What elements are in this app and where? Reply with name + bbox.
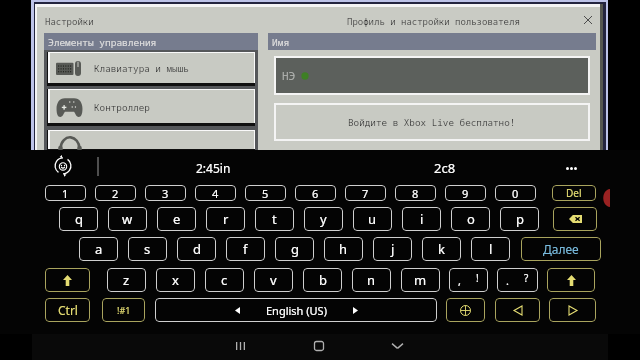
button[interactable]: f [226, 237, 265, 261]
button[interactable]: 2 [95, 185, 136, 201]
button[interactable]: d [177, 237, 216, 261]
button[interactable]: 6 [295, 185, 336, 201]
button[interactable]: b [303, 268, 342, 292]
button[interactable]: o [451, 207, 490, 231]
button[interactable]: a [79, 237, 118, 261]
staticText: ? [524, 271, 529, 285]
button[interactable]: y [304, 207, 343, 231]
staticText: 7 [362, 186, 369, 201]
button[interactable]: 0 [495, 185, 536, 201]
button[interactable] [446, 298, 485, 322]
staticText: Настройки [45, 15, 94, 27]
button[interactable] [549, 298, 596, 322]
staticText: 3 [162, 186, 169, 201]
button[interactable]: НЭ [276, 58, 588, 93]
button[interactable]: 1 [45, 185, 86, 201]
staticText: o [467, 210, 475, 228]
staticText: Профиль и настройки пользователя [347, 15, 520, 27]
button[interactable]: Контроллер [50, 90, 254, 123]
button[interactable]: 3 [145, 185, 186, 201]
button[interactable]: Emoji [53, 155, 73, 175]
button[interactable]: n [352, 268, 391, 292]
staticText: 2c8 [434, 159, 456, 177]
button[interactable]: w [108, 207, 147, 231]
staticText: 2:45in [196, 160, 231, 176]
staticText: 4 [212, 186, 219, 201]
button[interactable]: Recents [222, 333, 258, 359]
staticText: i [420, 210, 424, 228]
staticText: Элементы управления [48, 36, 157, 49]
button[interactable]: 4 [195, 185, 236, 201]
staticText: h [339, 240, 348, 258]
button[interactable]: z [107, 268, 146, 292]
staticText: x [172, 271, 179, 289]
button[interactable]: c [205, 268, 244, 292]
staticText: НЭ [282, 68, 296, 83]
staticText: t [272, 210, 277, 228]
staticText: b [319, 271, 327, 289]
button[interactable] [495, 298, 540, 322]
button[interactable]: 8 [395, 185, 436, 201]
staticText: s [144, 240, 151, 258]
button[interactable] [45, 268, 90, 292]
button[interactable]: Home [301, 333, 337, 359]
staticText: 6 [312, 186, 319, 201]
button[interactable]: q [59, 207, 98, 231]
staticText: ! [476, 271, 479, 285]
staticText: 5 [262, 186, 269, 201]
button[interactable] [547, 268, 595, 292]
button[interactable]: 9 [445, 185, 486, 201]
button[interactable]: s [128, 237, 167, 261]
button[interactable]: g [275, 237, 314, 261]
button[interactable]: x [156, 268, 195, 292]
button[interactable]: English (US) [155, 298, 437, 322]
button[interactable]: 7 [345, 185, 386, 201]
button[interactable]: Ctrl [45, 298, 90, 322]
staticText: n [367, 271, 376, 289]
button[interactable]: Далее [521, 237, 601, 261]
staticText: f [243, 240, 248, 258]
button[interactable]: !#1 [102, 298, 145, 322]
button[interactable]: i [402, 207, 441, 231]
button[interactable]: k [422, 237, 461, 261]
button[interactable]: 5 [245, 185, 286, 201]
staticText: a [95, 240, 103, 258]
button[interactable]: h [324, 237, 363, 261]
staticText: d [193, 240, 201, 258]
button[interactable]: Back [379, 333, 415, 359]
button[interactable]: , [449, 268, 488, 292]
button[interactable]: p [500, 207, 539, 231]
button[interactable]: More options [560, 157, 582, 179]
button[interactable]: e [157, 207, 196, 231]
button[interactable]: Close [579, 11, 597, 29]
button[interactable] [553, 207, 597, 231]
button[interactable]: t [255, 207, 294, 231]
button[interactable]: m [401, 268, 440, 292]
staticText: g [291, 240, 299, 258]
button[interactable]: Войдите в Xbox Live бесплатно! [276, 105, 588, 139]
staticText: Del [566, 186, 582, 200]
button[interactable]: j [373, 237, 412, 261]
button[interactable]: v [254, 268, 293, 292]
staticText: Контроллер [94, 101, 150, 114]
button[interactable]: r [206, 207, 245, 231]
staticText: Клавиатура и мышь [94, 62, 189, 75]
staticText: Использовать сотовую сеть передачи данны… [272, 148, 501, 161]
button[interactable]: Клавиатура и мышь [50, 53, 254, 83]
button[interactable]: l [471, 237, 510, 261]
staticText: q [75, 210, 83, 228]
staticText: u [368, 210, 377, 228]
staticText: 0 [512, 186, 519, 201]
staticText: l [489, 240, 493, 258]
button[interactable]: u [353, 207, 392, 231]
staticText: . [506, 273, 509, 288]
staticText: Далее [543, 241, 579, 257]
staticText: 1 [62, 186, 69, 201]
button[interactable] [50, 131, 254, 149]
button[interactable]: . [497, 268, 538, 292]
staticText: v [270, 271, 277, 289]
button[interactable]: Del [552, 185, 596, 201]
staticText: m [414, 271, 427, 289]
staticText: w [122, 210, 133, 228]
staticText: j [391, 240, 395, 258]
